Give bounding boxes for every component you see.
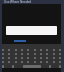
button[interactable] xyxy=(21,57,23,59)
button[interactable] xyxy=(27,53,29,55)
button[interactable] xyxy=(2,61,4,63)
button[interactable] xyxy=(8,49,10,51)
button[interactable] xyxy=(40,53,42,55)
button[interactable] xyxy=(2,49,4,51)
button[interactable] xyxy=(53,61,55,63)
button[interactable] xyxy=(15,49,17,51)
button[interactable] xyxy=(8,61,10,63)
button[interactable] xyxy=(12,65,14,68)
button[interactable] xyxy=(15,53,17,55)
button[interactable] xyxy=(6,26,57,35)
button[interactable] xyxy=(46,53,48,55)
button[interactable] xyxy=(21,61,23,63)
button[interactable] xyxy=(2,65,4,68)
button[interactable] xyxy=(34,49,36,51)
button[interactable] xyxy=(2,57,4,59)
button[interactable] xyxy=(59,49,61,51)
button[interactable] xyxy=(8,53,10,55)
button[interactable] xyxy=(27,57,29,59)
button[interactable] xyxy=(49,65,51,68)
button[interactable] xyxy=(59,61,61,63)
button[interactable] xyxy=(40,61,42,63)
button[interactable]: Use Where Needed xyxy=(2,0,61,4)
button[interactable] xyxy=(59,57,61,59)
button[interactable] xyxy=(40,57,42,59)
button[interactable] xyxy=(34,53,36,55)
button[interactable] xyxy=(59,65,61,68)
button[interactable] xyxy=(53,49,55,51)
button[interactable] xyxy=(21,53,23,55)
button[interactable] xyxy=(46,57,48,59)
button[interactable] xyxy=(15,61,17,63)
button[interactable] xyxy=(34,57,36,59)
button[interactable] xyxy=(53,57,55,59)
button[interactable] xyxy=(34,61,36,63)
button[interactable] xyxy=(27,49,29,51)
button[interactable] xyxy=(21,49,23,51)
button[interactable] xyxy=(46,61,48,63)
button[interactable] xyxy=(40,49,42,51)
button[interactable] xyxy=(8,57,10,59)
button[interactable] xyxy=(15,57,17,59)
button[interactable] xyxy=(59,53,61,55)
button[interactable] xyxy=(2,53,4,55)
button[interactable] xyxy=(46,49,48,51)
staticText: Use Where Needed xyxy=(4,0,32,4)
button[interactable] xyxy=(27,61,29,63)
button[interactable] xyxy=(53,53,55,55)
